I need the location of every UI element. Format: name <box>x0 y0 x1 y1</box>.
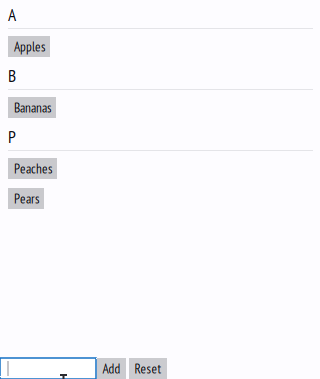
staticText: Bananas <box>14 99 52 116</box>
button[interactable]: Pears <box>8 188 44 209</box>
staticText: A <box>8 3 16 26</box>
staticText: Peaches <box>14 160 53 177</box>
button[interactable]: Add <box>97 358 126 379</box>
staticText: B <box>8 64 16 87</box>
button[interactable]: Bananas <box>8 97 56 118</box>
button[interactable]: Apples <box>8 36 50 57</box>
staticText: Reset <box>134 360 161 377</box>
staticText: P <box>8 125 16 148</box>
button[interactable]: Peaches <box>8 158 57 179</box>
staticText: Add <box>102 360 120 377</box>
button[interactable]: New fruit name <box>0 358 96 379</box>
button[interactable]: Reset <box>129 358 167 379</box>
staticText: Pears <box>14 190 40 207</box>
staticText: Apples <box>14 38 46 55</box>
